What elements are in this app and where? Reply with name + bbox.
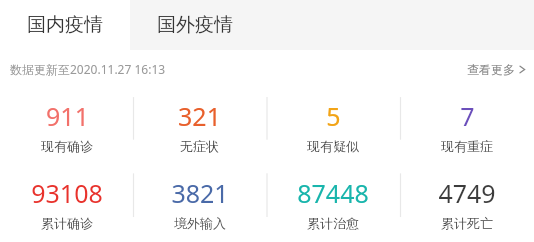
button[interactable]: 3821 bbox=[133, 164, 266, 242]
staticText: 87448 bbox=[297, 176, 369, 210]
button[interactable]: 7 bbox=[400, 88, 534, 164]
button[interactable]: 87448 bbox=[266, 164, 400, 242]
staticText: 4749 bbox=[438, 176, 496, 210]
button[interactable]: 93108 bbox=[0, 164, 133, 242]
button[interactable]: 5 bbox=[266, 88, 400, 164]
staticText: 数据更新至2020.11.27 16:13 bbox=[10, 61, 166, 77]
staticText: 现有重症 bbox=[441, 138, 493, 154]
staticText: 国外疫情 bbox=[157, 13, 233, 37]
staticText: 911 bbox=[46, 99, 89, 133]
staticText: 累计确诊 bbox=[41, 215, 93, 231]
staticText: 5 bbox=[326, 99, 341, 133]
staticText: 321 bbox=[178, 99, 221, 133]
staticText: 现有确诊 bbox=[41, 138, 93, 154]
button[interactable]: 321 bbox=[133, 88, 266, 164]
button[interactable]: 911 bbox=[0, 88, 133, 164]
staticText: 现有疑似 bbox=[307, 138, 359, 154]
staticText: 查看更多 bbox=[467, 62, 515, 77]
staticText: 累计死亡 bbox=[441, 215, 493, 231]
staticText: 7 bbox=[460, 99, 475, 133]
button[interactable]: 国外疫情 bbox=[130, 0, 260, 50]
staticText: 境外输入 bbox=[174, 215, 226, 231]
staticText: 3821 bbox=[171, 176, 229, 210]
button[interactable]: 查看更多 bbox=[467, 62, 526, 77]
button[interactable]: 国内疫情 bbox=[0, 0, 130, 50]
button[interactable]: 4749 bbox=[400, 164, 534, 242]
staticText: 国内疫情 bbox=[27, 13, 103, 37]
staticText: 93108 bbox=[31, 176, 103, 210]
staticText: 无症状 bbox=[180, 138, 219, 154]
staticText: 累计治愈 bbox=[307, 215, 359, 231]
